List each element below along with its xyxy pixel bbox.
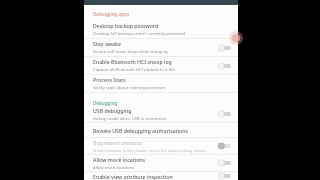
button[interactable]: Toggle setting [218, 110, 231, 118]
button[interactable]: Stay awake [84, 39, 238, 56]
staticText: Debugging apps [93, 11, 130, 17]
button[interactable]: Process Stats [84, 75, 238, 92]
staticText: Screen will never sleep while charging [93, 49, 168, 55]
button[interactable]: Toggle setting [218, 44, 231, 52]
staticText: Geeky stats about running processes [93, 85, 166, 91]
staticText: Capture all Bluetooth HCI packets in a f… [93, 67, 175, 73]
staticText: Allow mock locations [93, 156, 146, 163]
staticText: Debugging [93, 100, 118, 106]
button[interactable]: Allow mock locations [84, 155, 238, 171]
button[interactable]: Revoke USB debugging authorisations [84, 123, 238, 137]
staticText: Enable Bluetooth HCI snoop log [93, 58, 172, 65]
button[interactable]: Toggle setting [218, 172, 231, 180]
button[interactable]: Bug report shortcut [84, 138, 238, 154]
button[interactable]: Enable Bluetooth HCI snoop log [84, 57, 238, 74]
staticText: Desktop backup password [93, 22, 159, 29]
button[interactable]: Desktop backup password [84, 21, 238, 38]
staticText: Revoke USB debugging authorisations [93, 127, 189, 134]
staticText: Show a button in the power menu for taki… [93, 148, 206, 154]
button[interactable]: Enable view attribute inspection [84, 172, 238, 180]
staticText: Allow mock locations [93, 165, 135, 171]
staticText: Debug mode when USB is connected [93, 116, 166, 122]
staticText: Process Stats [93, 76, 126, 83]
button[interactable]: USB debugging [84, 106, 238, 122]
staticText: Stay awake [93, 40, 121, 47]
staticText: USB debugging [93, 107, 132, 114]
staticText: Desktop full backups aren't currently pr… [93, 31, 186, 37]
staticText: Bug report shortcut [93, 139, 143, 146]
button[interactable]: Toggle setting [218, 62, 231, 70]
button[interactable]: Toggle setting [218, 142, 231, 150]
staticText: Enable view attribute inspection [93, 173, 173, 180]
button[interactable]: Toggle setting [218, 159, 231, 167]
